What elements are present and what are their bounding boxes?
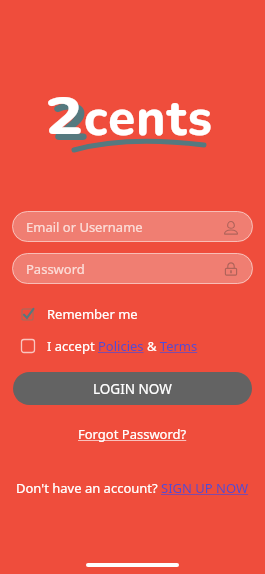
button[interactable]: LOGIN NOW	[13, 372, 252, 405]
staticText: Password	[26, 260, 223, 278]
staticText: Remember me	[47, 305, 138, 323]
staticText: cents	[84, 85, 214, 152]
other: Password	[223, 261, 239, 277]
button[interactable]: Password	[12, 253, 253, 284]
staticText: I accept Policies & Terms	[47, 337, 198, 355]
button[interactable]: Don't have an account? SIGN UP NOW	[12, 476, 253, 500]
button[interactable]: Email or Username	[12, 211, 253, 242]
staticText: LOGIN NOW	[93, 380, 172, 398]
staticText: 2	[45, 81, 84, 152]
button[interactable]: I accept Policies & Terms	[18, 334, 204, 358]
staticText: 2	[51, 87, 90, 158]
button[interactable]: Forgot Password?	[70, 422, 195, 446]
staticText: Email or Username	[26, 218, 223, 236]
other: User account	[223, 219, 239, 235]
button[interactable]: Remember me	[18, 302, 144, 326]
